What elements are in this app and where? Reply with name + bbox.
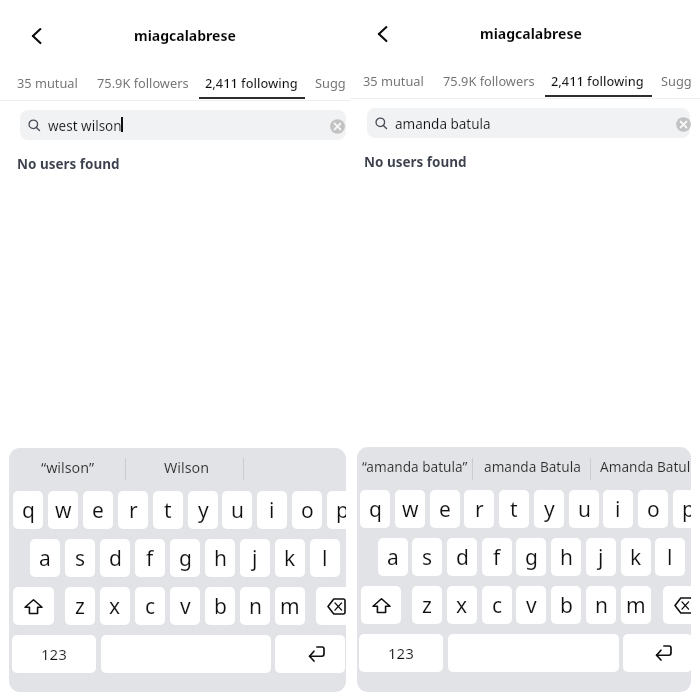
button[interactable] — [13, 587, 54, 625]
staticText: b — [214, 592, 227, 621]
button[interactable]: amanda Batula — [484, 449, 581, 483]
button[interactable]: Clear search — [674, 115, 692, 133]
button[interactable]: n — [586, 586, 616, 624]
button[interactable]: u — [222, 491, 252, 529]
button[interactable]: Sugg — [315, 70, 346, 94]
button[interactable]: a — [30, 539, 60, 577]
button[interactable]: e — [430, 490, 460, 528]
button[interactable]: 123 — [359, 634, 443, 672]
staticText: 123 — [388, 643, 414, 663]
other: Backspace — [663, 586, 691, 624]
button[interactable] — [275, 635, 345, 673]
staticText: f — [493, 543, 501, 572]
button[interactable]: r — [118, 491, 148, 529]
button[interactable]: o — [292, 491, 322, 529]
button[interactable]: s — [65, 539, 95, 577]
staticText: k — [630, 543, 642, 572]
button[interactable]: “amanda batula” — [362, 449, 468, 483]
button[interactable]: Clear search — [328, 117, 346, 135]
button[interactable]: q — [360, 490, 390, 528]
button[interactable]: d — [447, 538, 477, 576]
button[interactable]: y — [534, 490, 564, 528]
button[interactable]: p — [327, 491, 346, 529]
staticText: Sugg — [315, 74, 346, 91]
button[interactable]: a — [378, 538, 408, 576]
button[interactable]: z — [65, 587, 95, 625]
button[interactable]: c — [135, 587, 165, 625]
button[interactable]: v — [170, 587, 200, 625]
staticText: v — [180, 592, 191, 621]
button[interactable]: n — [240, 587, 270, 625]
button[interactable]: o — [638, 490, 668, 528]
staticText: i — [615, 495, 621, 524]
button[interactable]: “wilson” — [41, 450, 95, 484]
button[interactable] — [663, 586, 691, 624]
button[interactable]: p — [673, 490, 691, 528]
button[interactable]: b — [551, 586, 581, 624]
button[interactable]: w — [48, 491, 78, 529]
button[interactable]: y — [188, 491, 218, 529]
staticText: v — [526, 591, 537, 620]
button[interactable]: 123 — [12, 635, 96, 673]
button[interactable]: l — [655, 538, 685, 576]
button[interactable]: i — [257, 491, 287, 529]
button[interactable]: 75.9K followers — [443, 68, 535, 92]
staticText: o — [301, 496, 314, 525]
button[interactable]: j — [240, 539, 270, 577]
button[interactable]: x — [447, 586, 477, 624]
staticText: d — [456, 543, 469, 572]
button[interactable]: 35 mutual — [17, 70, 78, 94]
button[interactable]: t — [499, 490, 529, 528]
staticText: 75.9K followers — [443, 72, 535, 89]
button[interactable]: amanda batula — [367, 108, 690, 138]
button[interactable]: Wilson — [164, 450, 210, 484]
staticText: a — [39, 544, 51, 573]
button[interactable]: b — [205, 587, 235, 625]
button[interactable]: f — [135, 539, 165, 577]
button[interactable]: 2,411 following — [551, 68, 644, 92]
button[interactable]: x — [100, 587, 130, 625]
button[interactable]: Sugg — [661, 68, 692, 92]
staticText: “amanda batula” — [362, 457, 468, 476]
button[interactable]: z — [412, 586, 442, 624]
button[interactable]: r — [464, 490, 494, 528]
button[interactable]: m — [275, 587, 305, 625]
button[interactable]: 35 mutual — [363, 68, 424, 92]
button[interactable]: west wilson — [20, 110, 346, 140]
staticText: e — [439, 495, 451, 524]
button[interactable]: j — [586, 538, 616, 576]
button[interactable]: i — [603, 490, 633, 528]
button[interactable]: e — [83, 491, 113, 529]
button[interactable]: g — [170, 539, 200, 577]
button[interactable]: u — [569, 490, 599, 528]
button[interactable]: 2,411 following — [205, 70, 298, 94]
staticText: u — [231, 496, 244, 525]
button[interactable]: w — [395, 490, 425, 528]
button[interactable] — [361, 586, 401, 624]
button[interactable]: v — [516, 586, 546, 624]
button[interactable]: h — [205, 539, 235, 577]
button[interactable]: f — [482, 538, 512, 576]
button[interactable]: 75.9K followers — [97, 70, 189, 94]
button[interactable]: q — [13, 491, 43, 529]
button[interactable]: k — [621, 538, 651, 576]
button[interactable]: d — [100, 539, 130, 577]
button[interactable]: t — [153, 491, 183, 529]
button[interactable]: l — [310, 539, 340, 577]
button[interactable]: h — [551, 538, 581, 576]
button[interactable]: Amanda Batul — [600, 449, 691, 483]
staticText: z — [75, 592, 85, 621]
button[interactable] — [623, 634, 691, 672]
button[interactable]: c — [482, 586, 512, 624]
staticText: h — [560, 543, 573, 572]
button[interactable]: Back — [20, 20, 52, 52]
button[interactable]: m — [621, 586, 651, 624]
staticText: e — [92, 496, 104, 525]
button[interactable]: s — [412, 538, 442, 576]
button[interactable]: g — [516, 538, 546, 576]
button[interactable]: Back — [366, 18, 398, 50]
button[interactable] — [316, 587, 346, 625]
button[interactable]: k — [275, 539, 305, 577]
